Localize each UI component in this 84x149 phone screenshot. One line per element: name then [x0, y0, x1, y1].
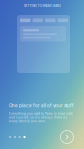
button[interactable]: Next	[59, 129, 75, 145]
staticText: GETTING TO KNOW HUBU	[23, 4, 60, 8]
staticText: Everything you add to Hubu is kept safe …	[9, 112, 73, 123]
staticText: One place for all of your stuff	[9, 103, 74, 108]
